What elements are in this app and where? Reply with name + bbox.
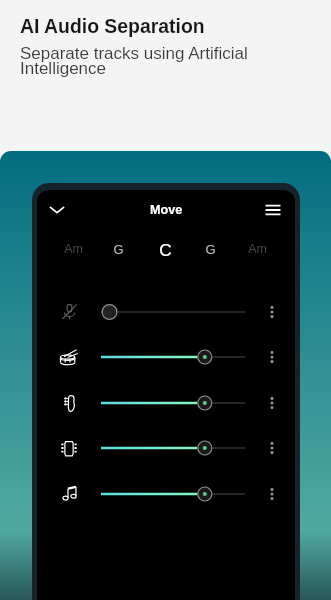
button[interactable]: Instrument track (52, 295, 86, 329)
button[interactable] (91, 387, 255, 419)
button[interactable]: More options (257, 432, 287, 464)
button[interactable]: Instrument track (52, 431, 86, 465)
button[interactable] (91, 341, 255, 373)
button[interactable]: G (95, 236, 141, 262)
staticText: Am (248, 242, 267, 256)
button[interactable]: More options (257, 296, 287, 328)
staticText: G (113, 242, 124, 257)
staticText: AI Audio Separation (20, 15, 205, 37)
button[interactable]: Am (234, 236, 280, 262)
button[interactable]: More options (257, 478, 287, 510)
button[interactable] (91, 432, 255, 464)
staticText: Move (150, 203, 183, 217)
button[interactable]: Collapse (39, 192, 74, 227)
button[interactable]: Menu (255, 192, 290, 227)
staticText: Separate tracks using Artificial Intelli… (20, 44, 252, 78)
button[interactable]: Instrument track (52, 477, 86, 511)
button[interactable]: Instrument track (52, 386, 86, 420)
staticText: Am (64, 242, 83, 256)
button[interactable]: Instrument track (52, 340, 86, 374)
button[interactable]: G (187, 236, 233, 262)
button[interactable]: More options (257, 341, 287, 373)
staticText: C (159, 240, 172, 259)
button[interactable]: C (142, 236, 188, 262)
button[interactable] (91, 296, 255, 328)
button[interactable]: More options (257, 387, 287, 419)
button[interactable] (91, 478, 255, 510)
staticText: G (205, 242, 216, 257)
button[interactable]: Am (50, 236, 96, 262)
